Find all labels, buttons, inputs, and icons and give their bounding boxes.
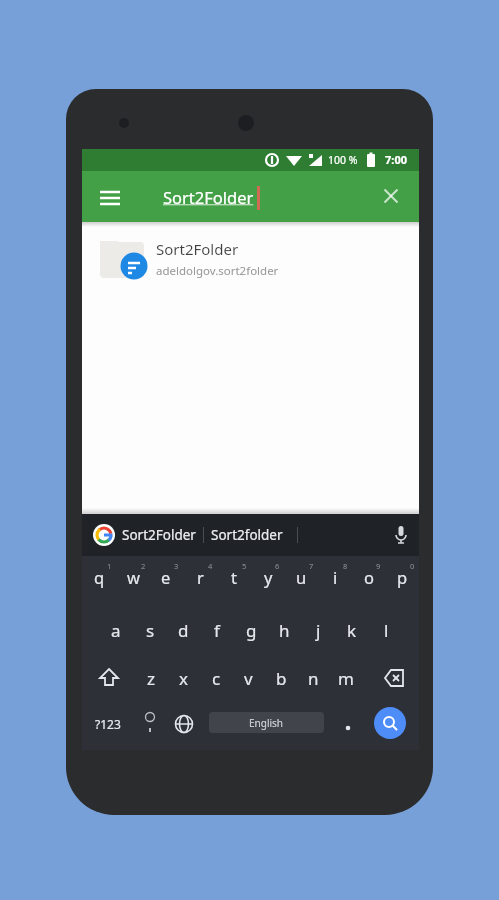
button[interactable]: x: [167, 654, 199, 702]
staticText: m: [338, 667, 354, 690]
staticText: z: [147, 667, 155, 690]
staticText: 7:00: [385, 152, 407, 167]
staticText: v: [244, 667, 253, 690]
button[interactable]: [92, 184, 130, 210]
staticText: c: [212, 667, 221, 690]
staticText: s: [146, 619, 155, 642]
button[interactable]: q: [82, 556, 116, 598]
staticText: i: [333, 566, 338, 588]
button[interactable]: h: [267, 606, 301, 654]
button[interactable]: g: [234, 606, 268, 654]
staticText: Sort2folder: [211, 526, 283, 544]
button[interactable]: [334, 702, 362, 746]
button[interactable]: z: [135, 654, 167, 702]
button[interactable]: v: [232, 654, 264, 702]
staticText: e: [161, 566, 171, 588]
staticText: 9: [376, 561, 381, 571]
staticText: 1: [107, 561, 112, 571]
staticText: t: [231, 566, 237, 588]
button[interactable]: [170, 702, 198, 746]
button[interactable]: r: [183, 556, 217, 598]
button[interactable]: English: [209, 712, 324, 733]
button[interactable]: d: [166, 606, 200, 654]
staticText: Sort2Folder: [156, 239, 239, 259]
button[interactable]: j: [301, 606, 335, 654]
staticText: 8: [343, 561, 348, 571]
staticText: q: [94, 566, 105, 588]
staticText: d: [178, 619, 189, 642]
button[interactable]: e: [149, 556, 183, 598]
staticText: adeldolgov.sort2folder: [156, 263, 279, 279]
staticText: Sort2Folder: [163, 186, 254, 208]
button[interactable]: [380, 185, 402, 207]
button[interactable]: [136, 702, 164, 746]
button[interactable]: [390, 524, 412, 546]
button[interactable]: Sort2folder: [211, 514, 283, 556]
staticText: 2: [141, 561, 146, 571]
staticText: 5: [242, 561, 247, 571]
button[interactable]: [93, 524, 115, 546]
staticText: l: [384, 619, 389, 642]
button[interactable]: w: [116, 556, 150, 598]
staticText: x: [179, 667, 188, 690]
staticText: 0: [410, 561, 415, 571]
staticText: y: [264, 566, 273, 588]
staticText: English: [249, 716, 284, 730]
button[interactable]: s: [133, 606, 167, 654]
button[interactable]: [91, 654, 127, 702]
staticText: 3: [174, 561, 179, 571]
button[interactable]: k: [335, 606, 369, 654]
button[interactable]: Sort2Folder: [82, 222, 419, 284]
staticText: ?123: [95, 716, 121, 732]
staticText: n: [308, 667, 319, 690]
button[interactable]: o: [352, 556, 386, 598]
button[interactable]: l: [369, 606, 403, 654]
button[interactable]: [372, 654, 410, 702]
button[interactable]: p: [385, 556, 419, 598]
staticText: u: [296, 566, 307, 588]
staticText: 100 %: [328, 153, 358, 167]
button[interactable]: n: [297, 654, 329, 702]
button[interactable]: Sort2Folder: [122, 514, 196, 556]
staticText: r: [197, 566, 204, 588]
staticText: o: [364, 566, 374, 588]
staticText: b: [276, 667, 287, 690]
button[interactable]: b: [265, 654, 297, 702]
staticText: h: [279, 619, 290, 642]
button[interactable]: y: [251, 556, 285, 598]
button[interactable]: [374, 707, 406, 739]
button[interactable]: m: [330, 654, 362, 702]
staticText: j: [316, 619, 321, 642]
staticText: p: [397, 566, 408, 588]
staticText: 6: [275, 561, 280, 571]
staticText: 4: [208, 561, 213, 571]
button[interactable]: Sort2Folder: [163, 183, 254, 211]
button[interactable]: i: [318, 556, 352, 598]
staticText: a: [111, 619, 121, 642]
staticText: g: [246, 619, 257, 642]
staticText: 7: [309, 561, 314, 571]
staticText: Sort2Folder: [122, 526, 196, 544]
button[interactable]: u: [284, 556, 318, 598]
button[interactable]: f: [200, 606, 234, 654]
staticText: w: [127, 566, 140, 588]
button[interactable]: t: [217, 556, 251, 598]
button[interactable]: c: [200, 654, 232, 702]
staticText: f: [214, 619, 220, 642]
button[interactable]: a: [99, 606, 133, 654]
staticText: k: [347, 619, 357, 642]
button[interactable]: ?123: [90, 702, 126, 746]
